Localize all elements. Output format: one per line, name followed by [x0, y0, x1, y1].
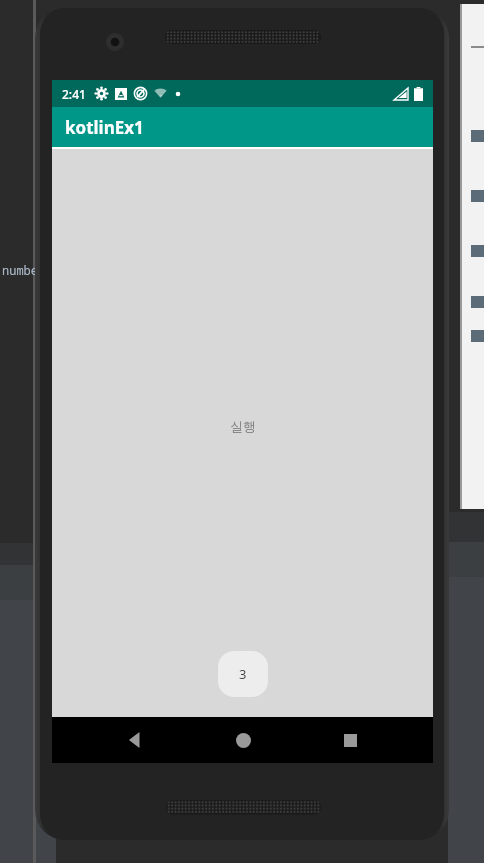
staticText: numbe	[2, 262, 39, 278]
button[interactable]: Home	[219, 717, 267, 763]
button[interactable]: Back	[111, 717, 159, 763]
button[interactable]: 3	[218, 651, 268, 697]
staticText: kotlinEx1	[65, 116, 144, 139]
staticText: 실행	[230, 418, 256, 434]
staticText: 2:41	[62, 86, 86, 102]
staticText: 3	[239, 665, 247, 683]
button[interactable]: Recent apps	[326, 717, 374, 763]
